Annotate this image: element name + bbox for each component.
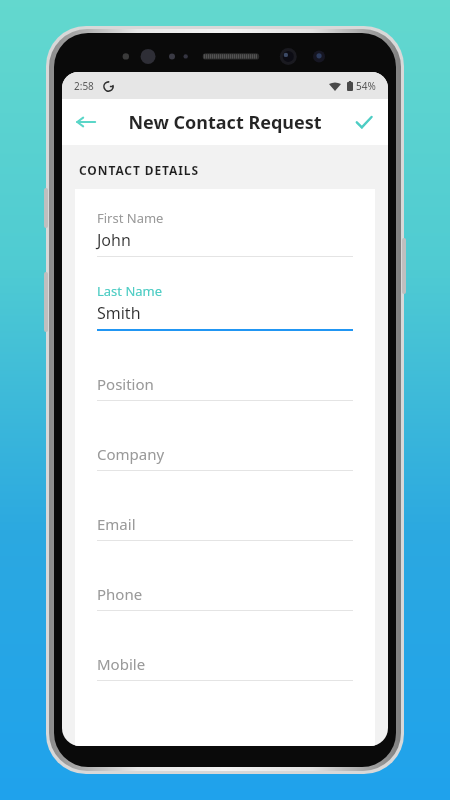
- staticText: First Name: [97, 209, 164, 227]
- staticText: Phone: [97, 584, 143, 604]
- staticText: Mobile: [97, 654, 146, 674]
- staticText: 54%: [356, 79, 376, 93]
- button[interactable]: Email: [97, 496, 353, 541]
- button[interactable]: Back: [68, 104, 104, 140]
- button[interactable]: First Name: [97, 209, 353, 257]
- staticText: Company: [97, 444, 165, 464]
- staticText: Last Name: [97, 282, 163, 300]
- staticText: Smith: [97, 302, 141, 324]
- staticText: CONTACT DETAILS: [79, 162, 199, 178]
- staticText: John: [97, 229, 131, 251]
- button[interactable]: Phone: [97, 566, 353, 611]
- button[interactable]: Mobile: [97, 636, 353, 681]
- staticText: Email: [97, 514, 136, 534]
- staticText: Position: [97, 374, 154, 394]
- button[interactable]: Last Name: [97, 282, 353, 331]
- button[interactable]: Save: [346, 104, 382, 140]
- staticText: 2:58: [74, 79, 94, 93]
- staticText: New Contact Request: [128, 110, 322, 135]
- button[interactable]: Position: [97, 356, 353, 401]
- button[interactable]: Company: [97, 426, 353, 471]
